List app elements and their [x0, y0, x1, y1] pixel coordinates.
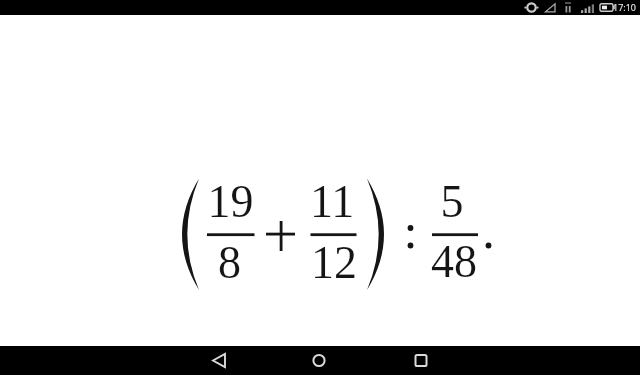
button[interactable]	[299, 346, 339, 375]
button[interactable]	[401, 346, 441, 375]
button[interactable]	[199, 346, 239, 375]
